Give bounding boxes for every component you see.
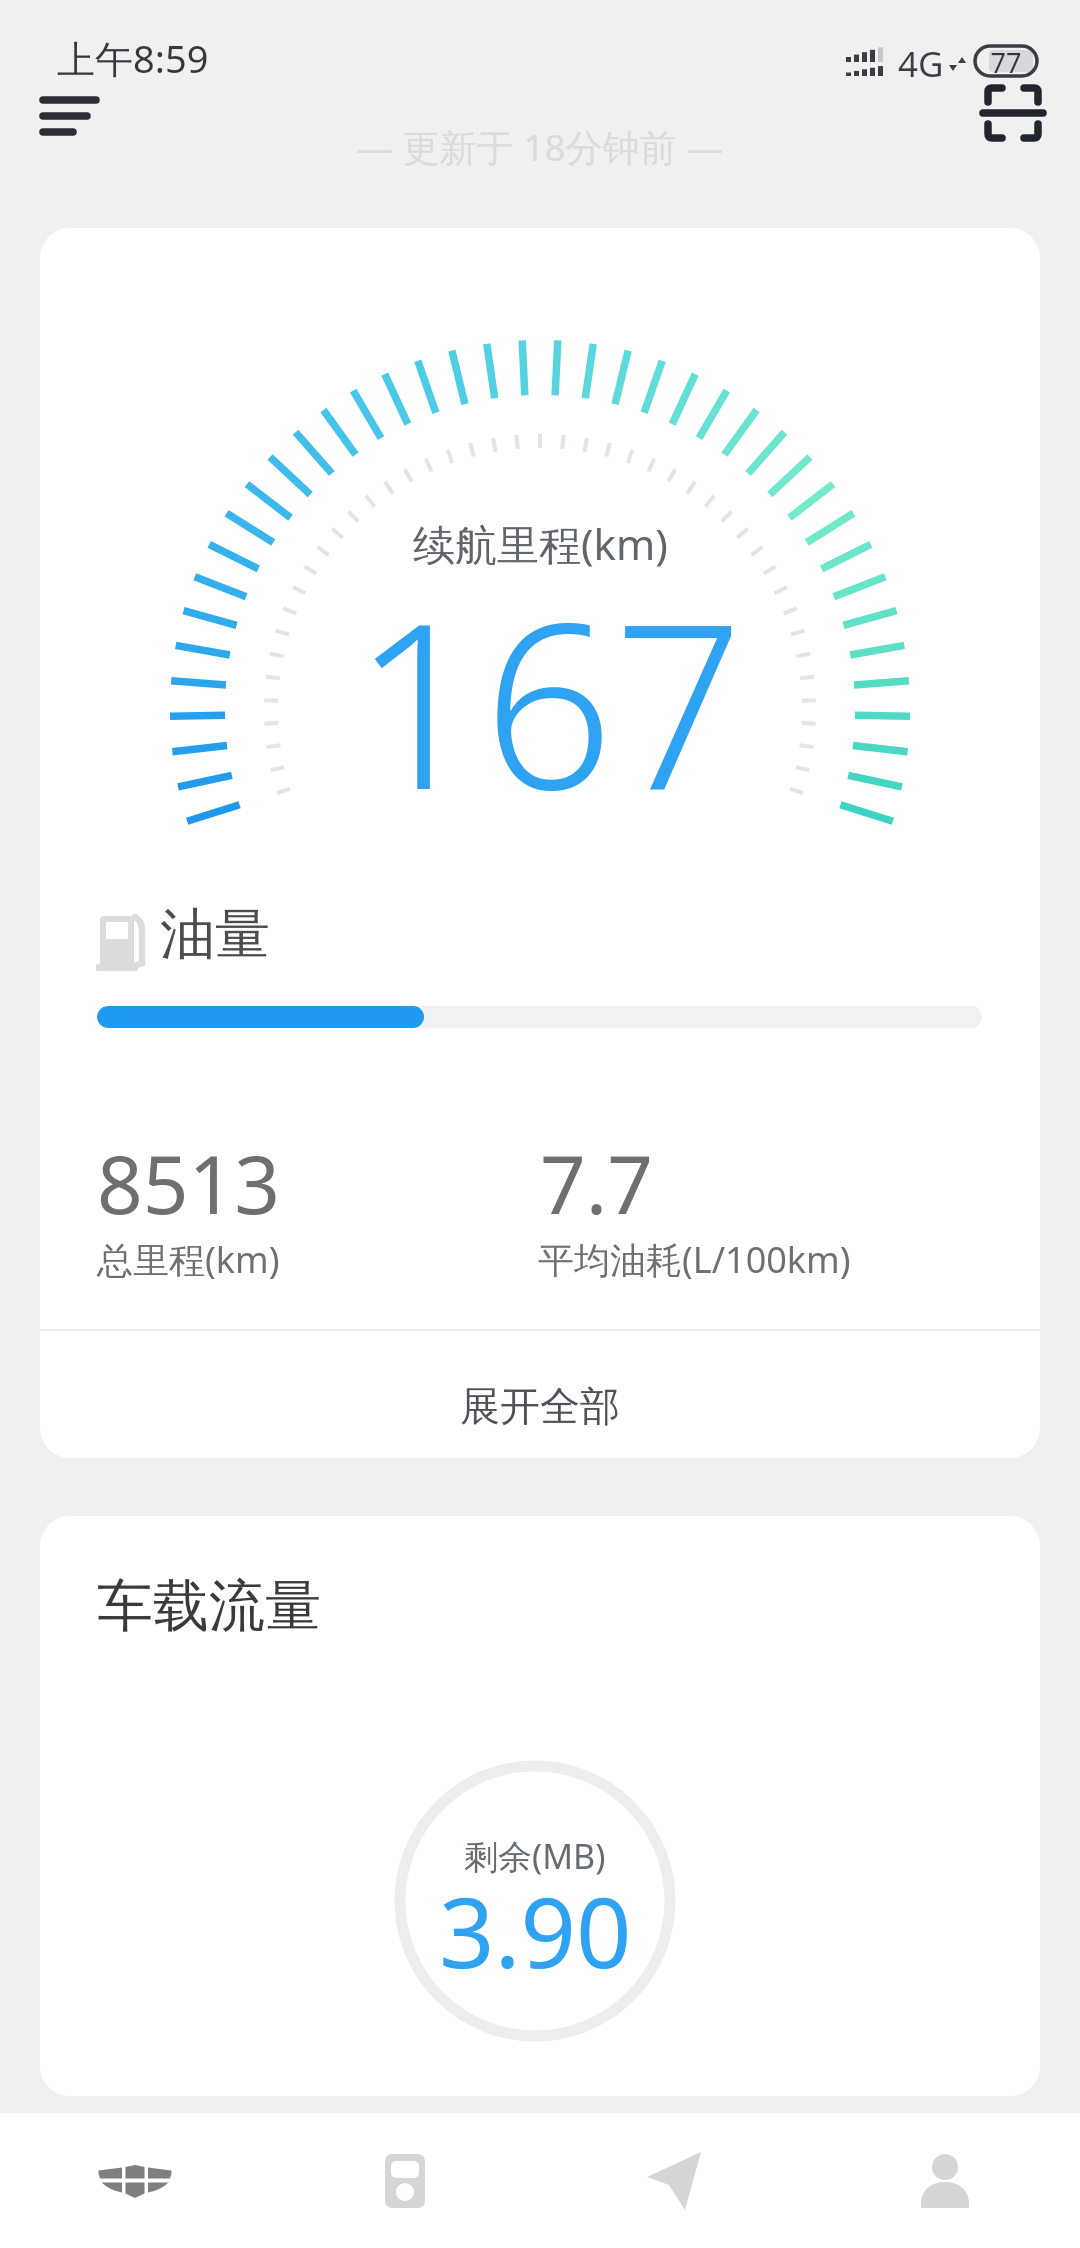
button[interactable] (30, 84, 110, 148)
staticText: 剩余(MB) (464, 1833, 606, 1879)
button[interactable] (540, 2113, 810, 2248)
staticText: 总里程(km) (97, 1235, 280, 1284)
staticText: 167 (353, 545, 744, 856)
staticText: 4G (898, 40, 944, 88)
button[interactable] (810, 2113, 1080, 2248)
staticText: 上午8:59 (57, 32, 209, 84)
staticText: 8513 (97, 1128, 281, 1237)
button[interactable] (972, 78, 1052, 154)
staticText: 续航里程(km) (413, 515, 668, 572)
button[interactable] (0, 2113, 270, 2248)
staticText: 7.7 (540, 1128, 653, 1237)
staticText: — 更新于 18分钟前 — (356, 121, 724, 172)
staticText: 77 (975, 44, 1037, 81)
staticText: 3.90 (439, 1864, 632, 1996)
button[interactable] (270, 2113, 540, 2248)
button[interactable]: 展开全部 (40, 1331, 1040, 1458)
staticText: 平均油耗(L/100km) (538, 1235, 851, 1284)
staticText: 油量 (160, 900, 270, 969)
staticText: 展开全部 (460, 1381, 620, 1431)
staticText: 车载流量 (97, 1571, 321, 1642)
